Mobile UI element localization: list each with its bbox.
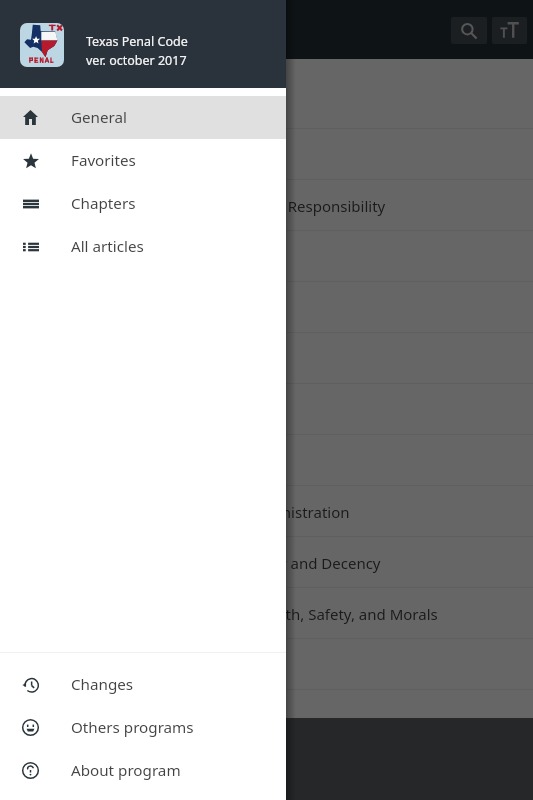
button[interactable]: About program (0, 749, 286, 792)
button[interactable]: Title 4. Inchoate Offenses (0, 282, 533, 333)
staticText: ver. october 2017 (86, 52, 187, 69)
staticText: Title 3. Punishments (25, 247, 168, 267)
staticText: Title 1. Introductory Provisions (25, 145, 240, 165)
button[interactable]: Text size (492, 17, 527, 44)
button[interactable]: Title 7. Offenses Against Property (0, 435, 533, 486)
button[interactable]: Others programs (0, 706, 286, 749)
button[interactable]: Chapters (0, 182, 286, 225)
staticText: Others programs (71, 717, 194, 738)
staticText: Title 9. Offenses Against Public Order a… (25, 553, 381, 573)
staticText: Title 2. General Principles of Criminal … (25, 196, 386, 216)
staticText: All articles (71, 236, 144, 257)
staticText: Favorites (71, 150, 136, 171)
staticText: Chapters (71, 193, 136, 214)
staticText: General (71, 107, 127, 128)
button[interactable]: Search (451, 17, 487, 44)
button[interactable]: Title 6. Offenses Against the Family (0, 384, 533, 435)
button[interactable]: Title 10. Offenses Against Public Health… (0, 588, 533, 639)
button[interactable]: Title 8. Offenses Against Public Adminis… (0, 486, 533, 537)
button[interactable]: Title 1. Introductory Provisions (0, 129, 533, 180)
button[interactable]: Title 2. General Principles of Criminal … (0, 180, 533, 231)
staticText: Texas Penal Code (86, 33, 188, 50)
staticText: About program (71, 760, 181, 781)
button[interactable]: Texas Penal Code (0, 0, 286, 88)
button[interactable] (0, 59, 533, 129)
button[interactable]: General (0, 96, 286, 139)
button[interactable]: Changes (0, 663, 286, 706)
button[interactable]: Title 11. Organized Crime (0, 639, 533, 690)
staticText: Changes (71, 674, 134, 695)
button[interactable]: All articles (0, 225, 286, 268)
staticText: Title 8. Offenses Against Public Adminis… (25, 502, 350, 522)
button[interactable]: Favorites (0, 139, 286, 182)
button[interactable]: Title 3. Punishments (0, 231, 533, 282)
staticText: Title 10. Offenses Against Public Health… (25, 604, 438, 624)
button[interactable]: Title 9. Offenses Against Public Order a… (0, 537, 533, 588)
button[interactable]: Title 5. Offenses Against the Person (0, 333, 533, 384)
